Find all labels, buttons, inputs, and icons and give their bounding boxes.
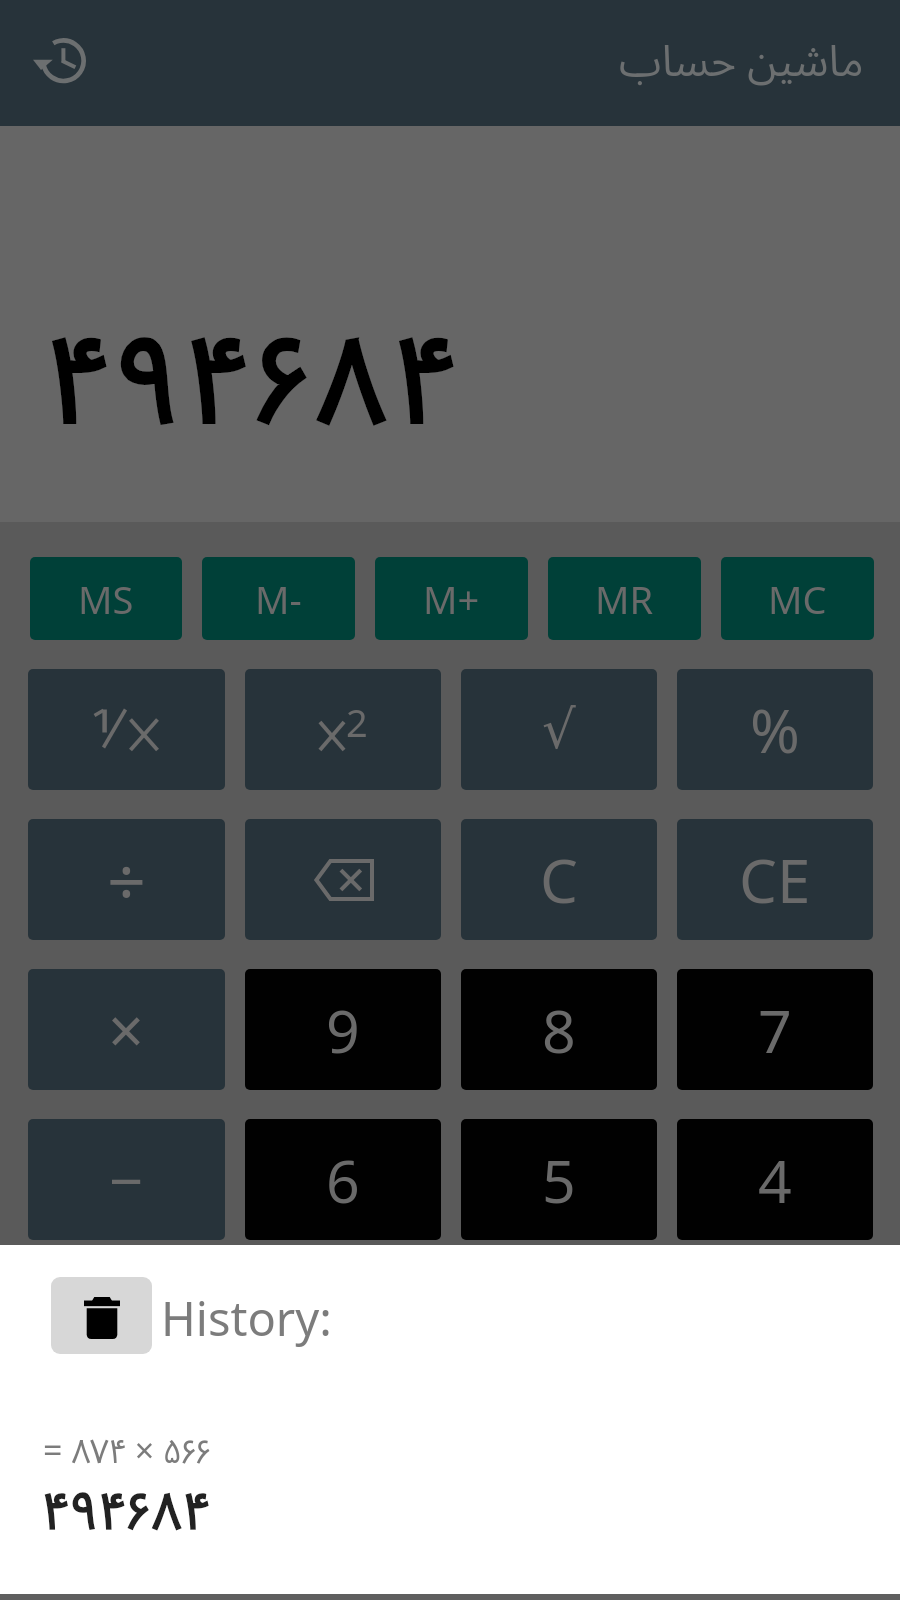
button[interactable]: × — [28, 969, 225, 1090]
button[interactable]: Backspace — [245, 819, 441, 940]
staticText: MS — [78, 573, 134, 625]
staticText: History: — [161, 1286, 332, 1350]
staticText: 8 — [542, 990, 576, 1070]
button[interactable]: 8 — [461, 969, 657, 1090]
button[interactable]: + — [28, 1269, 225, 1390]
button[interactable]: Clear history — [51, 1277, 152, 1354]
staticText: 4 — [758, 1140, 792, 1220]
button[interactable]: ÷ — [28, 819, 225, 940]
staticText: MC — [768, 573, 827, 625]
staticText: ماشین حساب — [619, 30, 864, 89]
staticText: + — [109, 1289, 144, 1371]
button[interactable]: − — [28, 1119, 225, 1240]
button[interactable]: % — [677, 669, 873, 790]
button[interactable]: = ۸۷۴ × ۵۶۶ — [0, 1427, 900, 1544]
button[interactable]: 2 — [245, 669, 441, 790]
button[interactable]: 9 — [245, 969, 441, 1090]
staticText: 9 — [326, 990, 360, 1070]
button[interactable]: C — [461, 819, 657, 940]
staticText: % — [750, 689, 800, 771]
staticText: CE — [739, 839, 811, 921]
staticText: 6 — [326, 1140, 360, 1220]
staticText: M- — [255, 573, 302, 625]
button[interactable] — [28, 669, 225, 790]
staticText: C — [540, 839, 578, 921]
staticText: ÷ — [107, 833, 146, 926]
staticText: M+ — [423, 573, 480, 625]
button[interactable]: CE — [677, 819, 873, 940]
staticText: − — [109, 1139, 144, 1221]
staticText: ۴۹۴۶۸۴ — [48, 292, 464, 458]
button[interactable]: 5 — [461, 1119, 657, 1240]
staticText: = ۸۷۴ × ۵۶۶ — [43, 1427, 211, 1473]
button[interactable]: 4 — [677, 1119, 873, 1240]
staticText: 3 — [326, 1290, 360, 1370]
staticText: 5 — [542, 1140, 576, 1220]
button[interactable]: MS — [30, 557, 182, 640]
button[interactable]: 7 — [677, 969, 873, 1090]
button[interactable]: 6 — [245, 1119, 441, 1240]
button[interactable]: History — [17, 19, 105, 107]
staticText: 2 — [346, 696, 368, 741]
staticText: MR — [595, 573, 654, 625]
staticText: √ — [542, 699, 576, 761]
staticText: × — [108, 987, 145, 1073]
button[interactable]: M- — [202, 557, 355, 640]
button[interactable]: MR — [548, 557, 701, 640]
button[interactable]: √ — [461, 669, 657, 790]
staticText: 7 — [758, 990, 792, 1070]
button[interactable]: 3 — [245, 1269, 441, 1390]
button[interactable]: M+ — [375, 557, 528, 640]
staticText: ۴۹۴۶۸۴ — [43, 1473, 212, 1544]
button[interactable]: MC — [721, 557, 874, 640]
